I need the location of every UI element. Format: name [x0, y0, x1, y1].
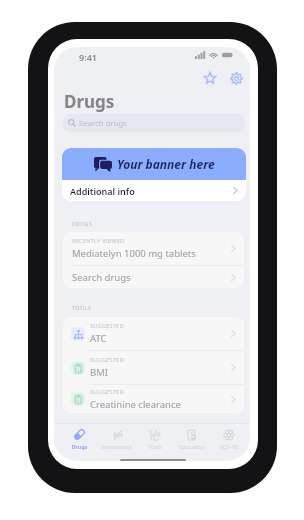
- staticText: 9:41: [79, 51, 97, 63]
- button[interactable]: Education: [173, 425, 210, 451]
- button[interactable]: RECENTLY VIEWED: [72, 232, 236, 265]
- button[interactable]: Your banner here: [62, 148, 246, 180]
- staticText: Your banner here: [117, 156, 215, 172]
- staticText: Additional info: [70, 185, 135, 197]
- button[interactable]: Search drugs: [72, 266, 236, 288]
- button[interactable]: SUGGESTED: [71, 351, 236, 384]
- button[interactable]: Additional info: [70, 180, 238, 201]
- staticText: TOOLS: [72, 304, 92, 311]
- staticText: Interactions: [101, 443, 133, 450]
- staticText: BMI: [90, 366, 109, 379]
- staticText: ATC: [90, 332, 107, 345]
- staticText: Mediatelyn 1000 mg tablets: [72, 247, 196, 260]
- staticText: Search drugs: [79, 118, 128, 129]
- button[interactable]: Search drugs: [63, 114, 245, 132]
- staticText: RECENTLY VIEWED: [72, 237, 125, 244]
- staticText: Tools: [148, 443, 162, 450]
- button[interactable]: Settings: [225, 67, 247, 89]
- button[interactable]: SUGGESTED: [71, 385, 236, 413]
- staticText: SUGGESTED: [90, 356, 124, 363]
- button[interactable]: Favorites: [199, 67, 221, 89]
- button[interactable]: Tools: [136, 425, 173, 451]
- staticText: Drugs: [71, 443, 88, 450]
- staticText: SUGGESTED: [90, 322, 124, 329]
- button[interactable]: ICD-10: [210, 425, 247, 451]
- button[interactable]: Drugs: [60, 425, 98, 451]
- staticText: Creatinine clearance: [90, 398, 181, 411]
- button[interactable]: SUGGESTED: [71, 317, 236, 350]
- staticText: SUGGESTED: [90, 388, 124, 395]
- staticText: Education: [179, 443, 205, 450]
- staticText: Drugs: [64, 90, 115, 113]
- staticText: ICD-10: [220, 443, 238, 450]
- staticText: Search drugs: [72, 271, 131, 284]
- button[interactable]: Interactions: [98, 425, 136, 451]
- staticText: DRUGS: [72, 220, 93, 227]
